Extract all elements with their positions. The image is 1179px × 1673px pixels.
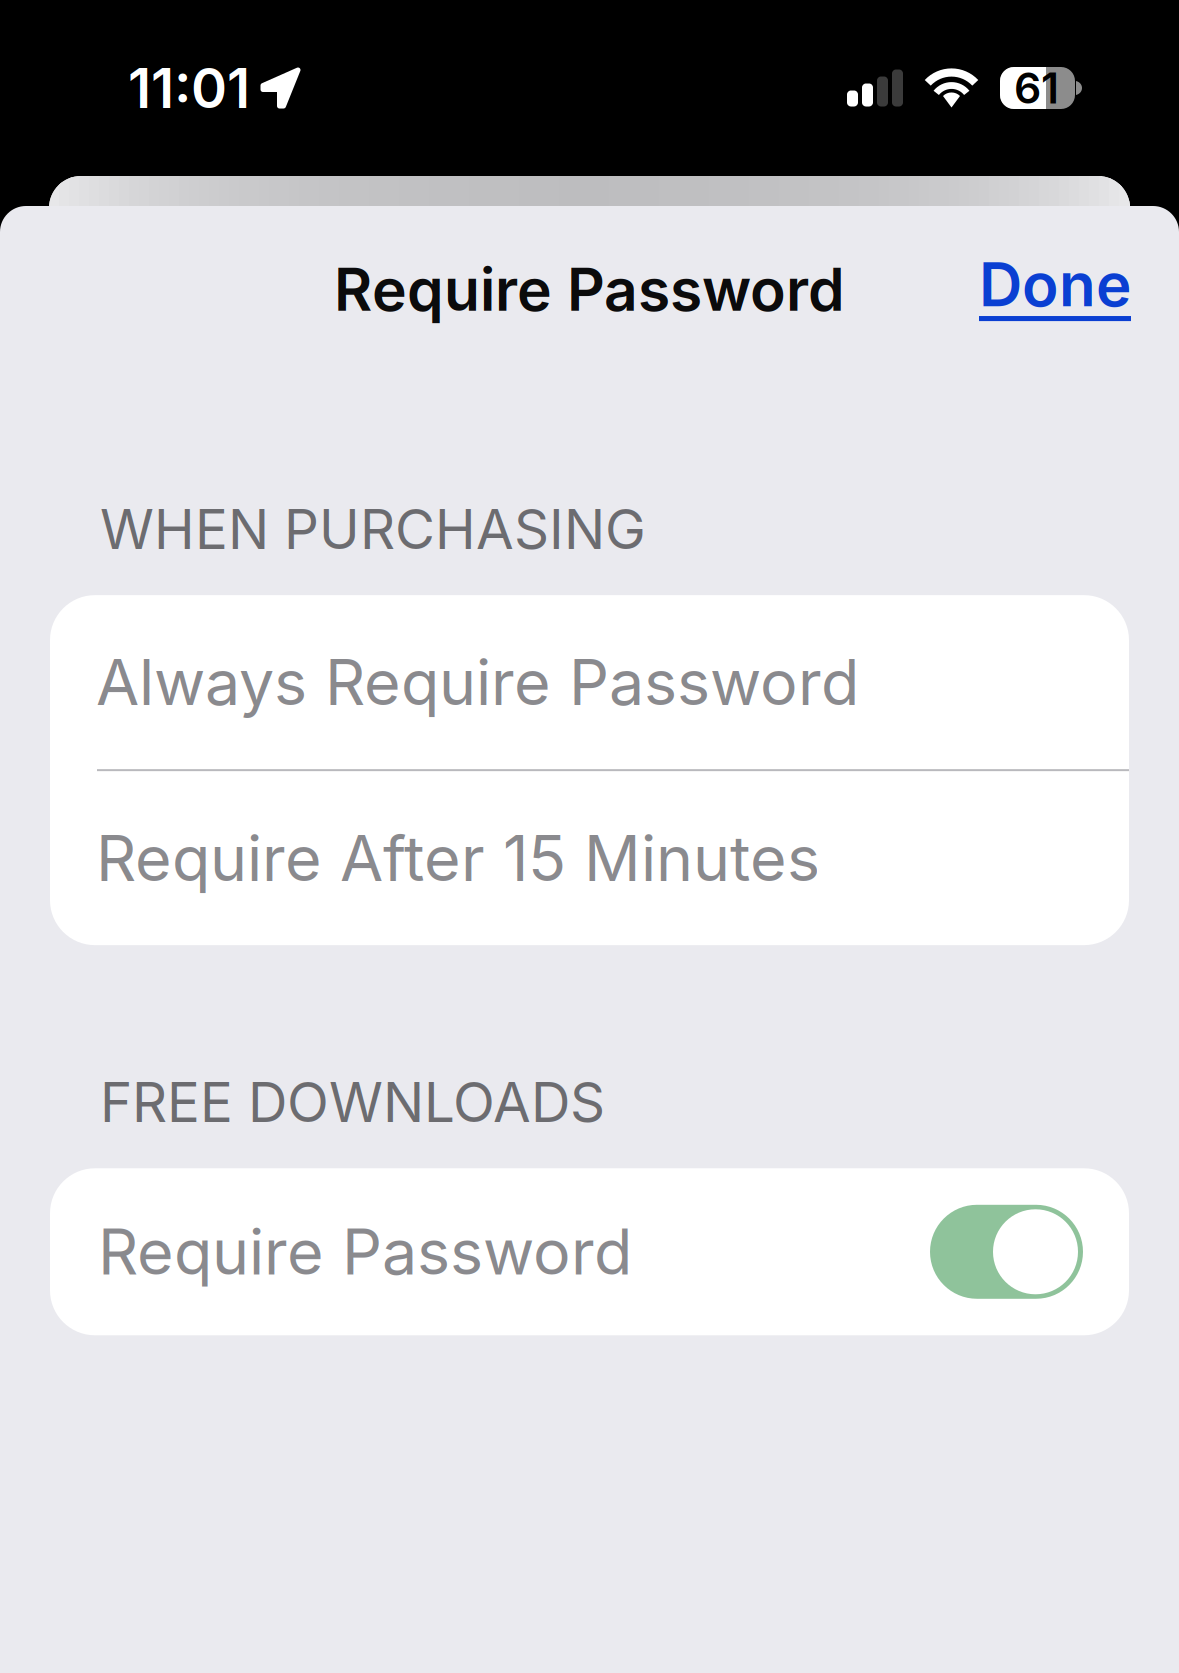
button[interactable]: Always Require Password: [50, 595, 1129, 769]
staticText: 11:01: [128, 55, 250, 121]
staticText: Require Password: [334, 254, 845, 325]
button[interactable]: Done: [975, 253, 1135, 326]
staticText: WHEN PURCHASING: [100, 496, 646, 562]
button[interactable]: Require Password: [50, 1168, 1129, 1335]
button[interactable]: Require After 15 Minutes: [50, 771, 1129, 945]
staticText: FREE DOWNLOADS: [100, 1069, 605, 1135]
staticText: Require Password: [98, 1214, 632, 1290]
staticText: Done: [979, 248, 1131, 321]
staticText: Require After 15 Minutes: [96, 820, 820, 896]
staticText: 61: [1014, 62, 1059, 114]
staticText: Always Require Password: [96, 644, 859, 720]
